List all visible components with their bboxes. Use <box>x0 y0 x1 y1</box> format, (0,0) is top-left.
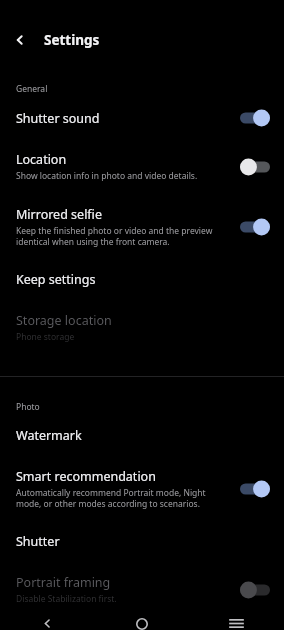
staticText: Shutter sound <box>16 110 100 127</box>
staticText: Shutter <box>16 533 60 550</box>
button[interactable]: Toggle <box>240 158 270 176</box>
staticText: Photo <box>16 401 40 413</box>
button[interactable]: Toggle <box>240 480 270 498</box>
button[interactable]: Recents <box>189 617 284 630</box>
button[interactable]: Smart recommendation <box>0 456 284 521</box>
button[interactable]: Back <box>0 617 94 630</box>
button[interactable]: Mirrored selfie <box>0 194 284 259</box>
staticText: Keep settings <box>16 271 96 288</box>
staticText: Phone storage <box>16 331 75 343</box>
button[interactable]: Watermark <box>0 413 284 456</box>
button[interactable]: Keep settings <box>0 259 284 300</box>
staticText: Automatically recommend Portrait mode, N… <box>16 487 206 509</box>
button[interactable]: Toggle <box>240 218 270 236</box>
button[interactable]: Toggle <box>240 109 270 127</box>
button[interactable]: Storage location <box>0 300 284 355</box>
staticText: Smart recommendation <box>16 468 156 485</box>
staticText: Watermark <box>16 427 82 444</box>
staticText: Portrait framing <box>16 574 111 591</box>
staticText: Settings <box>44 31 100 49</box>
button[interactable]: Shutter sound <box>0 95 284 139</box>
staticText: Mirrored selfie <box>16 206 102 223</box>
button[interactable]: Home <box>94 617 189 630</box>
staticText: Location <box>16 151 67 168</box>
button[interactable]: Portrait framing <box>0 562 284 617</box>
button[interactable]: Shutter <box>0 521 284 562</box>
staticText: Storage location <box>16 312 112 329</box>
button[interactable]: Location <box>0 139 284 194</box>
staticText: Keep the finished photo or video and the… <box>16 225 213 247</box>
staticText: Show location info in photo and video de… <box>16 170 198 182</box>
button[interactable]: Toggle <box>240 581 270 599</box>
staticText: General <box>16 83 48 95</box>
button[interactable]: Back <box>10 30 30 50</box>
staticText: Disable Stabilization first. <box>16 593 117 605</box>
